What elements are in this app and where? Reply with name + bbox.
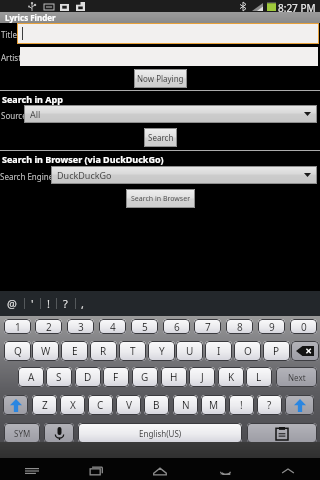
button[interactable]: Backspace xyxy=(291,341,319,361)
button[interactable]: K xyxy=(218,367,244,387)
button[interactable]: Home xyxy=(128,460,192,480)
staticText: All xyxy=(30,108,41,120)
button[interactable]: English(US) xyxy=(78,423,242,443)
button[interactable]: Shift xyxy=(285,395,314,415)
button[interactable]: F xyxy=(103,367,129,387)
staticText: ? xyxy=(63,296,68,311)
staticText: N xyxy=(182,398,190,412)
button[interactable]: @ xyxy=(0,291,24,316)
button[interactable]: 2 xyxy=(35,319,62,334)
staticText: 0 xyxy=(301,320,307,334)
button[interactable]: L xyxy=(246,367,272,387)
button[interactable]: ! xyxy=(229,395,254,415)
button[interactable] xyxy=(17,23,319,44)
button[interactable]: 8 xyxy=(226,319,253,334)
button[interactable]: N xyxy=(173,395,198,415)
staticText: I xyxy=(217,344,221,358)
button[interactable]: Menu xyxy=(0,460,64,480)
button[interactable]: ' xyxy=(24,291,40,316)
staticText: 5 xyxy=(142,320,148,334)
staticText: Now Playing xyxy=(137,73,184,84)
button[interactable]: M xyxy=(201,395,226,415)
button[interactable]: 0 xyxy=(290,319,317,334)
staticText: O xyxy=(244,344,252,358)
button[interactable]: 3 xyxy=(67,319,94,334)
button[interactable]: ? xyxy=(257,395,282,415)
staticText: A xyxy=(28,370,35,384)
staticText: D xyxy=(84,370,92,384)
staticText: 7 xyxy=(205,320,211,334)
button[interactable]: 9 xyxy=(258,319,285,334)
staticText: G xyxy=(141,370,149,384)
button[interactable]: X xyxy=(60,395,85,415)
staticText: H xyxy=(170,370,178,384)
button[interactable]: 6 xyxy=(163,319,190,334)
staticText: Q xyxy=(14,344,22,358)
button[interactable]: U xyxy=(176,341,203,361)
button[interactable]: Clipboard xyxy=(247,423,317,443)
button[interactable]: Z xyxy=(32,395,57,415)
button[interactable]: D xyxy=(75,367,101,387)
button[interactable]: Voice input xyxy=(44,423,74,443)
button[interactable]: , xyxy=(75,291,90,316)
button[interactable]: ! xyxy=(40,291,56,316)
button[interactable]: SYM xyxy=(4,423,40,443)
button[interactable]: Recent apps xyxy=(64,460,128,480)
staticText: C xyxy=(97,398,104,412)
button[interactable]: Y xyxy=(148,341,175,361)
staticText: English(US) xyxy=(139,428,182,439)
staticText: 8:27 PM xyxy=(278,1,316,13)
button[interactable]: W xyxy=(32,341,59,361)
button[interactable]: Hide keyboard xyxy=(256,460,320,480)
button[interactable]: 1 xyxy=(4,319,31,334)
staticText: P xyxy=(273,344,280,358)
staticText: F xyxy=(113,370,119,384)
staticText: Title xyxy=(1,29,17,40)
button[interactable]: E xyxy=(61,341,88,361)
button[interactable]: Q xyxy=(4,341,31,361)
button[interactable]: T xyxy=(119,341,146,361)
staticText: K xyxy=(228,370,235,384)
staticText: ! xyxy=(240,398,243,412)
staticText: @ xyxy=(7,296,17,311)
button[interactable]: Search xyxy=(144,128,177,147)
button[interactable]: All xyxy=(24,105,317,123)
button[interactable]: Shift xyxy=(3,395,28,415)
staticText: 4 xyxy=(110,320,116,334)
button[interactable]: 7 xyxy=(194,319,221,334)
staticText: E xyxy=(72,344,78,358)
button[interactable]: G xyxy=(132,367,158,387)
staticText: ' xyxy=(31,296,34,311)
button[interactable]: J xyxy=(189,367,215,387)
staticText: DuckDuckGo xyxy=(57,169,112,181)
button[interactable]: I xyxy=(205,341,232,361)
button[interactable]: P xyxy=(263,341,290,361)
button[interactable]: DuckDuckGo xyxy=(51,166,317,184)
button[interactable]: ? xyxy=(56,291,75,316)
button[interactable]: 4 xyxy=(99,319,126,334)
button[interactable]: Next xyxy=(276,367,317,387)
staticText: 2 xyxy=(46,320,52,334)
button[interactable]: O xyxy=(234,341,261,361)
staticText: J xyxy=(201,370,204,384)
staticText: 3 xyxy=(78,320,84,334)
staticText: T xyxy=(130,344,136,358)
staticText: R xyxy=(100,344,107,358)
button[interactable]: Back xyxy=(192,460,256,480)
button[interactable]: B xyxy=(144,395,169,415)
button[interactable]: Search in Browser xyxy=(126,189,195,208)
button[interactable]: Now Playing xyxy=(134,69,187,88)
button[interactable]: V xyxy=(116,395,141,415)
button[interactable]: C xyxy=(88,395,113,415)
button[interactable]: R xyxy=(90,341,117,361)
button[interactable]: S xyxy=(46,367,72,387)
button[interactable]: H xyxy=(161,367,187,387)
staticText: V xyxy=(126,398,132,412)
button[interactable]: A xyxy=(18,367,44,387)
staticText: X xyxy=(70,398,76,412)
staticText: Next xyxy=(288,372,306,383)
staticText: Z xyxy=(42,398,48,412)
button[interactable]: 5 xyxy=(131,319,158,334)
staticText: Search in App xyxy=(2,93,63,105)
